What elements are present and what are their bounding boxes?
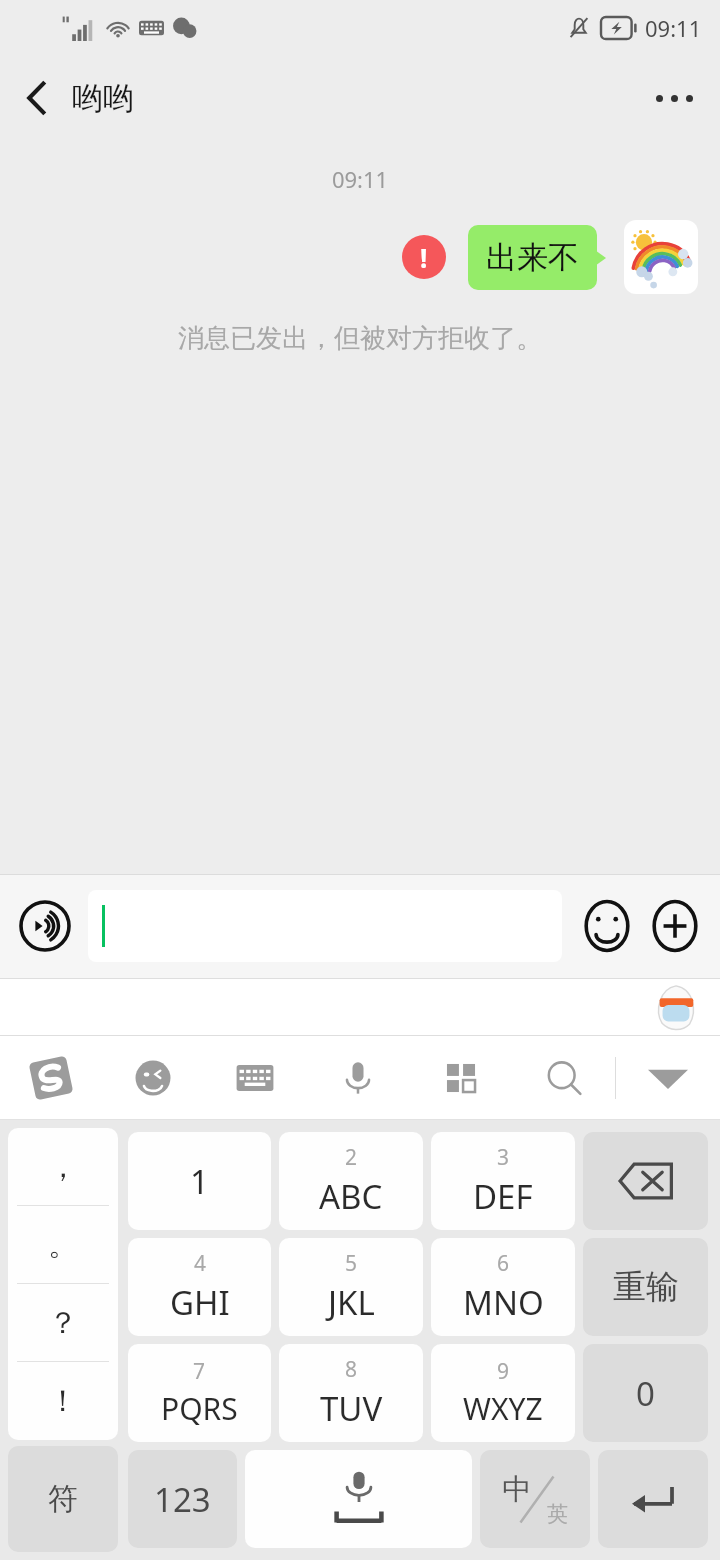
button[interactable] (88, 890, 562, 962)
button[interactable]: Tools (409, 1036, 512, 1120)
button[interactable]: More (644, 895, 706, 957)
staticText: 重输 (613, 1266, 679, 1308)
button[interactable]: 出来不 (468, 225, 597, 290)
staticText: 8 (345, 1355, 358, 1384)
staticText: 0 (636, 1371, 655, 1416)
staticText: ! (420, 240, 428, 275)
button[interactable]: Emoji panel (102, 1036, 204, 1120)
staticText: 5 (345, 1249, 358, 1278)
staticText: TUV (320, 1386, 383, 1431)
button[interactable]: 2 (279, 1132, 423, 1230)
button[interactable]: Space (245, 1450, 472, 1548)
button[interactable]: 3 (431, 1132, 575, 1230)
staticText: 符 (48, 1480, 78, 1518)
staticText: PQRS (161, 1388, 238, 1429)
staticText: ， (48, 1148, 78, 1186)
button[interactable]: 重输 (583, 1238, 708, 1336)
staticText: 9 (497, 1357, 510, 1386)
staticText: 消息已发出，但被对方拒收了。 (0, 322, 720, 355)
button[interactable]: 5 (279, 1238, 423, 1336)
button[interactable]: 6 (431, 1238, 575, 1336)
button[interactable]: Search (512, 1036, 615, 1120)
button[interactable]: ？ (8, 1284, 118, 1362)
button[interactable]: ！ (8, 1362, 118, 1440)
button[interactable]: Sogou logo (0, 1036, 102, 1120)
staticText: ！ (48, 1382, 78, 1420)
staticText: 英 (547, 1501, 568, 1527)
button[interactable]: Voice input (14, 895, 76, 957)
button[interactable]: 8 (279, 1344, 423, 1442)
button[interactable]: Emoji (576, 895, 638, 957)
button[interactable]: 符 (8, 1446, 118, 1552)
staticText: JKL (328, 1280, 375, 1325)
staticText: 。 (48, 1226, 78, 1264)
button[interactable]: ， (8, 1128, 118, 1206)
button[interactable]: 。 (8, 1206, 118, 1284)
staticText: 哟哟 (72, 79, 134, 118)
staticText: WXYZ (463, 1388, 543, 1429)
button[interactable]: 123 (128, 1450, 237, 1548)
button[interactable]: Sticker suggestion (652, 983, 700, 1031)
staticText: 4 (194, 1249, 207, 1278)
button[interactable]: 9 (431, 1344, 575, 1442)
staticText: 09:11 (645, 13, 702, 43)
button[interactable]: 1 (128, 1132, 271, 1230)
staticText: ABC (319, 1174, 383, 1219)
button[interactable]: Enter (598, 1450, 708, 1548)
staticText: 7 (193, 1357, 206, 1386)
button[interactable]: Resend failed message (402, 235, 446, 279)
staticText: 6 (497, 1249, 510, 1278)
staticText: 中 (502, 1471, 531, 1508)
staticText: 1 (190, 1159, 209, 1204)
staticText: 3 (497, 1143, 510, 1172)
button[interactable]: Hide keyboard (616, 1036, 720, 1120)
button[interactable]: Chinese English toggle (480, 1450, 590, 1548)
staticText: GHI (170, 1280, 230, 1325)
button[interactable]: 7 (128, 1344, 271, 1442)
button[interactable]: Contact avatar (624, 220, 698, 294)
staticText: 09:11 (0, 164, 720, 194)
staticText: MNO (463, 1280, 544, 1325)
button[interactable]: Back (0, 56, 72, 140)
button[interactable]: Backspace (583, 1132, 708, 1230)
button[interactable]: 4 (128, 1238, 271, 1336)
button[interactable]: Voice (306, 1036, 409, 1120)
button[interactable]: Keyboard layout (204, 1036, 306, 1120)
button[interactable]: More options (628, 56, 720, 140)
staticText: DEF (473, 1174, 533, 1219)
staticText: 123 (154, 1477, 211, 1522)
staticText: ？ (48, 1304, 78, 1342)
button[interactable]: 0 (583, 1344, 708, 1442)
staticText: 2 (345, 1143, 358, 1172)
staticText: 出来不 (486, 238, 579, 277)
